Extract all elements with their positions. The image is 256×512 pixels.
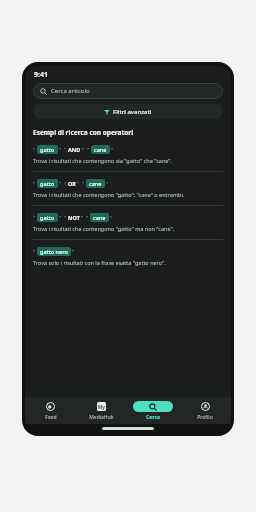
staticText: " xyxy=(77,180,80,187)
staticText: 9:41 xyxy=(34,70,48,80)
button[interactable]: Filtri avanzati xyxy=(33,104,223,119)
staticText: MediaHub xyxy=(89,414,114,421)
staticText: " xyxy=(110,214,113,221)
button[interactable]: Cerca articolo xyxy=(33,83,223,99)
staticText: cane xyxy=(94,146,107,153)
staticText: gatto nero xyxy=(40,248,68,255)
staticText: " xyxy=(59,146,62,153)
staticText: Trova i risultati che contengono sia "ga… xyxy=(33,157,173,164)
staticText: gatto xyxy=(40,180,55,187)
staticText: " xyxy=(72,248,75,255)
staticText: OR xyxy=(68,180,76,187)
staticText: " xyxy=(64,180,67,187)
staticText: cane xyxy=(89,180,102,187)
staticText: " xyxy=(59,214,62,221)
staticText: " xyxy=(64,146,67,153)
staticText: " xyxy=(106,180,109,187)
staticText: " xyxy=(81,214,84,221)
staticText: " xyxy=(82,146,85,153)
staticText: Esempi di ricerca con operatori xyxy=(33,128,134,137)
button[interactable]: Cerca xyxy=(127,397,179,424)
staticText: " xyxy=(86,214,89,221)
staticText: " xyxy=(111,146,114,153)
staticText: Trova i risultati che contengono "gatto"… xyxy=(33,191,185,198)
staticText: " xyxy=(82,180,85,187)
staticText: Trova i risultati che contengono "gatto"… xyxy=(33,225,175,232)
staticText: " xyxy=(33,180,36,187)
staticText: " xyxy=(33,248,36,255)
staticText: Trova solo i risultati con la frase esat… xyxy=(33,259,166,266)
staticText: Cerca articolo xyxy=(51,87,90,95)
staticText: " xyxy=(33,146,36,153)
button[interactable]: My xyxy=(76,397,127,424)
staticText: Cerca xyxy=(146,414,160,421)
staticText: Feed xyxy=(45,414,57,421)
button[interactable]: Feed xyxy=(25,397,76,424)
staticText: gatto xyxy=(40,146,55,153)
staticText: My xyxy=(98,404,105,410)
staticText: cane xyxy=(93,214,106,221)
button[interactable]: Profilo xyxy=(179,397,231,424)
staticText: " xyxy=(64,214,67,221)
staticText: Profilo xyxy=(197,414,213,421)
staticText: " xyxy=(87,146,90,153)
staticText: " xyxy=(33,214,36,221)
staticText: gatto xyxy=(40,214,55,221)
staticText: NOT xyxy=(68,214,80,221)
staticText: AND xyxy=(68,146,81,153)
staticText: " xyxy=(59,180,62,187)
staticText: Filtri avanzati xyxy=(113,108,152,116)
